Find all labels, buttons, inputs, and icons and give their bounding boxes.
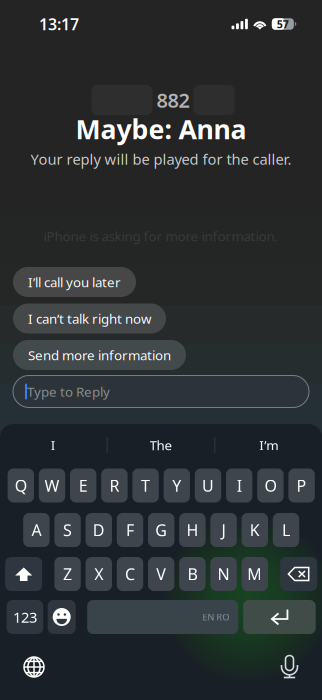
staticText: The (149, 436, 172, 454)
staticText: O (264, 475, 276, 496)
button[interactable]: Switch keyboard (23, 656, 45, 678)
staticText: I can’t talk right now (28, 310, 151, 327)
button[interactable]: Send more information (13, 340, 186, 370)
button[interactable]: I’ll call you later (13, 267, 136, 297)
staticText: K (250, 519, 260, 541)
button[interactable]: V (148, 557, 174, 591)
button[interactable]: X (86, 557, 112, 591)
button[interactable]: U (195, 468, 221, 502)
button[interactable]: 123 (7, 600, 43, 634)
button[interactable]: Type to Reply (13, 375, 309, 407)
button[interactable]: W (39, 468, 65, 502)
staticText: Maybe: Anna (75, 111, 246, 147)
button[interactable]: M (242, 557, 268, 591)
staticText: Q (15, 475, 27, 496)
staticText: Z (63, 563, 72, 585)
staticText: EN RO (202, 611, 229, 623)
staticText: M (247, 563, 262, 585)
staticText: L (282, 519, 290, 541)
staticText: A (31, 519, 41, 541)
staticText: Send more information (28, 346, 171, 364)
staticText: G (155, 519, 167, 541)
button[interactable]: The (108, 431, 214, 459)
staticText: 57 (277, 17, 289, 31)
button[interactable]: T (132, 468, 159, 502)
button[interactable]: Space (87, 600, 238, 634)
button[interactable]: D (86, 513, 112, 547)
button[interactable]: C (117, 557, 143, 591)
staticText: E (79, 475, 88, 496)
button[interactable]: K (242, 513, 268, 547)
button[interactable]: F (117, 513, 143, 547)
staticText: W (44, 475, 59, 496)
staticText: B (187, 563, 197, 585)
button[interactable]: A (23, 513, 50, 547)
staticText: C (125, 563, 135, 585)
staticText: V (156, 563, 166, 585)
button[interactable]: B (179, 557, 206, 591)
staticText: N (218, 563, 230, 585)
button[interactable]: I’m (215, 431, 322, 459)
staticText: P (297, 475, 307, 496)
button[interactable]: N (210, 557, 237, 591)
staticText: X (94, 563, 103, 585)
button[interactable]: E (70, 468, 96, 502)
staticText: H (186, 519, 198, 541)
staticText: Y (172, 475, 181, 496)
button[interactable]: J (210, 513, 237, 547)
button[interactable]: S (54, 513, 81, 547)
staticText: I (51, 436, 56, 454)
button[interactable]: I can’t talk right now (13, 303, 166, 333)
button[interactable]: O (257, 468, 284, 502)
button[interactable]: R (101, 468, 128, 502)
button[interactable]: Return (243, 600, 316, 634)
staticText: T (141, 475, 150, 496)
staticText: iPhone is asking for more information. (43, 227, 278, 245)
button[interactable]: P (288, 468, 315, 502)
button[interactable]: G (148, 513, 174, 547)
staticText: 882 (156, 87, 189, 113)
button[interactable]: Dictate (280, 655, 299, 679)
staticText: F (126, 519, 134, 541)
button[interactable]: I (0, 431, 107, 459)
staticText: Type to Reply (27, 383, 110, 400)
staticText: 123 (13, 607, 37, 627)
button[interactable]: Delete (280, 557, 317, 591)
button[interactable]: Shift (5, 557, 42, 591)
button[interactable]: Emoji (48, 600, 76, 634)
staticText: I (237, 475, 242, 496)
staticText: R (109, 475, 119, 496)
button[interactable]: Z (54, 557, 81, 591)
button[interactable]: H (179, 513, 206, 547)
staticText: Your reply will be played for the caller… (30, 149, 291, 169)
button[interactable]: Y (164, 468, 190, 502)
staticText: I’ll call you later (28, 273, 121, 291)
staticText: I’m (259, 436, 278, 454)
button[interactable]: I (226, 468, 252, 502)
staticText: J (222, 519, 226, 541)
staticText: S (63, 519, 72, 541)
staticText: 13:17 (39, 13, 79, 35)
staticText: U (202, 475, 214, 496)
button[interactable]: L (273, 513, 299, 547)
button[interactable]: Q (8, 468, 34, 502)
staticText: D (93, 519, 105, 541)
